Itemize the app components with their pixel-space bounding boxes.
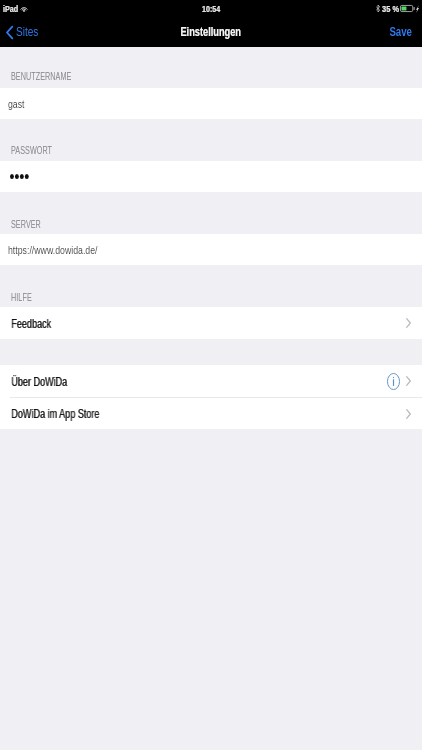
staticText: Save [389,25,412,39]
staticText: Sites [16,25,39,39]
staticText: Über DoWiDa [12,375,68,388]
staticText: https://www.dowida.de/ [8,243,98,256]
button[interactable]: Save [373,20,422,44]
staticText: Feedback [11,317,51,330]
staticText: SERVER [11,218,41,230]
staticText: Über DoWiDa [11,375,68,388]
button[interactable]: Über DoWiDa [0,365,422,397]
staticText: 35 % [382,3,399,14]
staticText: BENUTZERNAME [11,70,72,82]
staticText: DoWiDa im App Store [11,407,99,420]
button[interactable]: https://www.dowida.de/ [0,234,422,265]
staticText: Feedback [12,317,52,330]
staticText: iPad [3,3,19,14]
staticText: gast [8,97,25,110]
staticText: HILFE [11,291,32,303]
staticText: Einstellungen [180,25,242,39]
staticText: DoWiDa im App Store [12,407,100,420]
staticText: 10:54 [202,3,221,14]
button[interactable]: DoWiDa im App Store [0,398,422,429]
button[interactable]: Back to Sites [0,20,54,44]
staticText: PASSWORT [11,144,52,156]
button[interactable]: Feedback [0,307,422,339]
button[interactable] [0,161,422,192]
button[interactable]: gast [0,88,422,119]
